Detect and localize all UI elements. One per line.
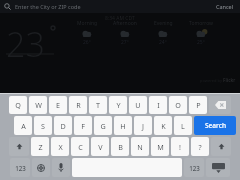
button[interactable]: Shift — [211, 137, 231, 156]
button[interactable]: A — [14, 116, 32, 135]
staticText: N — [137, 142, 143, 152]
button[interactable]: ! — [171, 137, 189, 156]
button[interactable]: W — [29, 96, 47, 114]
button[interactable]: Afternoon — [106, 20, 144, 46]
staticText: Morning — [77, 20, 98, 27]
button[interactable]: X — [51, 137, 69, 156]
button[interactable]: T — [89, 96, 107, 114]
staticText: A — [21, 121, 26, 131]
button[interactable]: Change language — [32, 158, 50, 177]
staticText: Tomorrow — [189, 20, 214, 27]
button[interactable]: I — [149, 96, 167, 114]
staticText: Flickr — [223, 77, 236, 83]
staticText: T — [96, 100, 100, 110]
button[interactable]: N — [131, 137, 149, 156]
staticText: X — [58, 142, 63, 152]
staticText: D — [60, 121, 66, 131]
button[interactable]: 123 — [184, 158, 204, 177]
staticText: ? — [198, 142, 202, 152]
button[interactable]: C — [71, 137, 89, 156]
staticText: B — [118, 142, 123, 152]
staticText: Afternoon — [113, 20, 137, 27]
button[interactable]: V — [91, 137, 109, 156]
button[interactable]: Hide keyboard — [206, 158, 230, 177]
staticText: 27° — [121, 39, 129, 46]
staticText: R — [76, 100, 81, 110]
button[interactable]: U — [129, 96, 147, 114]
button[interactable]: Voice input — [52, 158, 70, 177]
staticText: V — [98, 142, 103, 152]
staticText: C — [78, 142, 83, 152]
staticText: W — [35, 100, 42, 110]
staticText: E — [56, 100, 60, 110]
staticText: ! — [179, 142, 181, 152]
staticText: O — [175, 100, 181, 110]
button[interactable]: Search — [194, 116, 236, 135]
button[interactable]: J — [134, 116, 152, 135]
button[interactable]: Y — [109, 96, 127, 114]
button[interactable]: S — [34, 116, 52, 135]
staticText: I — [157, 100, 160, 110]
staticText: 8:34 AM CDT — [105, 15, 135, 22]
button[interactable]: 123 — [10, 158, 30, 177]
staticText: Z — [38, 142, 43, 152]
button[interactable]: D — [54, 116, 72, 135]
button[interactable]: Q — [9, 96, 27, 114]
staticText: 123 — [15, 164, 26, 172]
staticText: K — [161, 121, 166, 131]
button[interactable]: Enter the City or ZIP code — [4, 0, 214, 13]
staticText: P — [196, 100, 201, 110]
button[interactable]: F — [74, 116, 92, 135]
button[interactable]: Backspace — [209, 96, 231, 114]
staticText: Enter the City or ZIP code — [15, 3, 81, 10]
staticText: G — [100, 121, 106, 131]
staticText: F — [81, 121, 85, 131]
staticText: 24° — [159, 39, 167, 46]
staticText: H — [120, 121, 126, 131]
button[interactable]: K — [154, 116, 172, 135]
staticText: 25° — [197, 39, 205, 46]
staticText: Cancel — [216, 3, 234, 10]
staticText: Evening — [154, 20, 173, 27]
button[interactable]: E — [49, 96, 67, 114]
button[interactable]: M — [151, 137, 169, 156]
button[interactable]: Tomorrow — [182, 20, 220, 46]
button[interactable]: B — [111, 137, 129, 156]
button[interactable]: Cancel — [216, 0, 234, 13]
button[interactable]: R — [69, 96, 87, 114]
button[interactable]: Shift — [9, 137, 29, 156]
staticText: Search — [205, 121, 226, 130]
button[interactable]: Morning — [68, 20, 106, 46]
staticText: 123 — [189, 164, 200, 172]
staticText: M — [157, 142, 164, 152]
staticText: 23 — [6, 21, 45, 67]
staticText: Y — [116, 100, 121, 110]
button[interactable]: ? — [191, 137, 209, 156]
button[interactable]: G — [94, 116, 112, 135]
button[interactable]: Evening — [144, 20, 182, 46]
button[interactable]: O — [169, 96, 187, 114]
button[interactable]: H — [114, 116, 132, 135]
button[interactable]: L — [174, 116, 192, 135]
staticText: S — [41, 121, 45, 131]
staticText: Q — [15, 100, 21, 110]
button[interactable]: P — [189, 96, 207, 114]
staticText: 26° — [83, 39, 91, 46]
staticText: L — [181, 121, 185, 131]
staticText: U — [135, 100, 141, 110]
button[interactable]: Z — [31, 137, 49, 156]
staticText: J — [142, 121, 144, 131]
